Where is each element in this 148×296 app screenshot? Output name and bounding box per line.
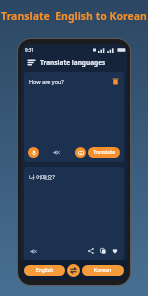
button[interactable]: Translate <box>88 147 120 158</box>
staticText: Translate languages <box>40 58 106 67</box>
button[interactable]: Clear text <box>110 76 120 86</box>
button[interactable]: Copy <box>98 246 108 256</box>
button[interactable]: Swap languages <box>67 264 80 277</box>
button[interactable]: Mute output <box>28 246 38 256</box>
staticText: Translate English to Korean <box>0 9 148 23</box>
button[interactable]: Korean <box>82 265 124 276</box>
button[interactable]: Mute <box>51 147 62 158</box>
staticText: 9:31 <box>25 47 34 53</box>
staticText: How are you? <box>29 78 64 85</box>
button[interactable]: Menu <box>26 57 37 68</box>
button[interactable]: Favorite <box>110 246 120 256</box>
staticText: Translate <box>93 149 115 156</box>
button[interactable]: Speak <box>28 147 39 158</box>
staticText: English <box>36 267 54 274</box>
button[interactable]: Keyboard <box>75 147 86 158</box>
staticText: 나 어때요? <box>29 173 55 181</box>
button[interactable]: English <box>24 265 65 276</box>
button[interactable]: Share <box>86 246 96 256</box>
staticText: Korean <box>94 267 112 274</box>
